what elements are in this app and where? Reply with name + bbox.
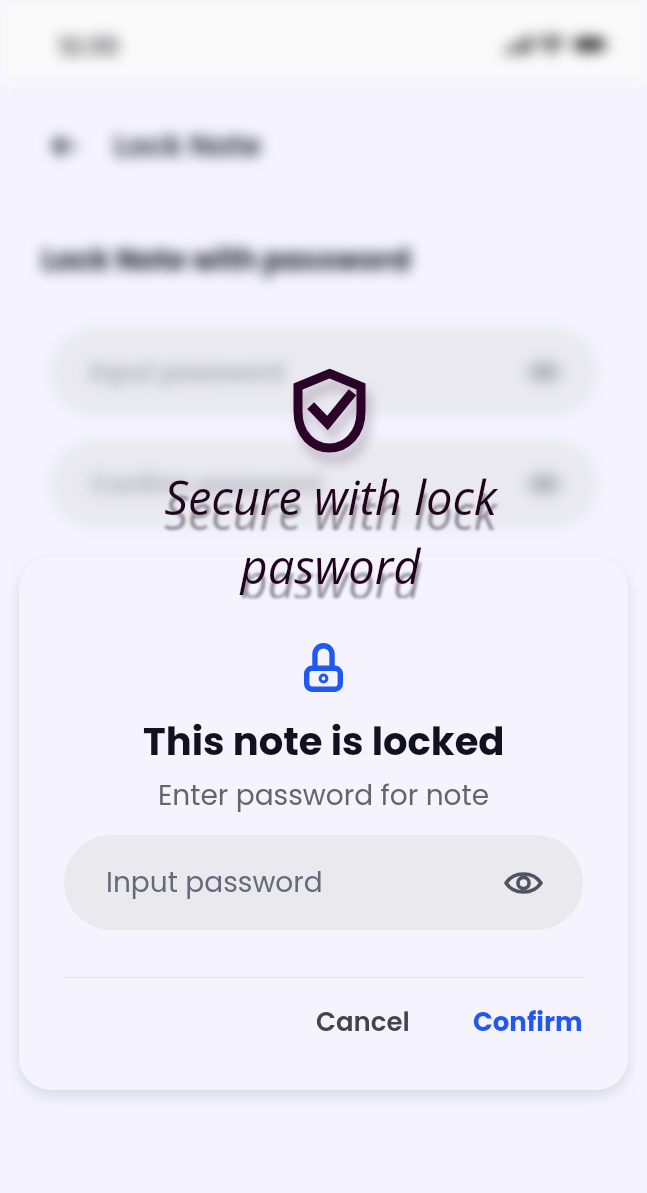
button[interactable]: Cancel [304, 992, 422, 1052]
staticText: Confirm password [90, 467, 321, 502]
button[interactable]: Input password [50, 329, 597, 415]
button[interactable]: Confirm password [50, 441, 597, 527]
staticText: Lock Note [114, 125, 261, 167]
button[interactable]: Show password [521, 349, 567, 395]
staticText: Enter password for note [158, 776, 490, 815]
staticText: 12:30 [58, 29, 120, 64]
staticText: Input password [90, 355, 284, 390]
button[interactable]: Confirm [461, 992, 595, 1052]
button[interactable]: Input password [64, 835, 583, 930]
staticText: Input password [106, 863, 323, 902]
staticText: Confirm [473, 1004, 583, 1040]
button[interactable]: Show password [497, 857, 549, 909]
button[interactable]: Back [48, 130, 80, 162]
staticText: Cancel [316, 1004, 410, 1040]
staticText: This note is locked [143, 715, 505, 769]
button[interactable]: Show password [521, 461, 567, 507]
staticText: Lock Note with password [42, 240, 411, 281]
staticText: Secure with lock pasword [7, 480, 647, 613]
staticText: Secure with lock pasword [7, 465, 647, 598]
